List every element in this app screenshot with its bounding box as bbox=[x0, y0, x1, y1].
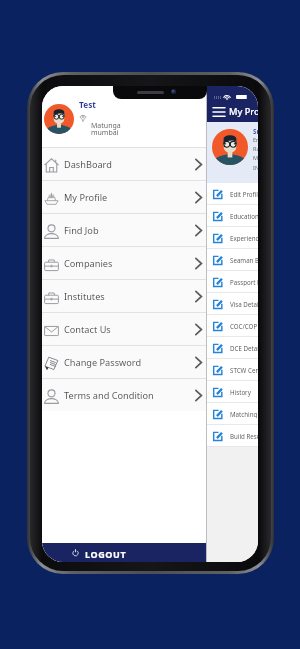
button[interactable]: Find Job bbox=[42, 213, 206, 246]
staticText: Institutes bbox=[64, 290, 105, 303]
staticText: Test bbox=[79, 99, 96, 110]
button[interactable]: DashBoard bbox=[42, 147, 206, 180]
button[interactable]: Contact Us bbox=[42, 312, 206, 345]
staticText: Contact Us bbox=[64, 323, 111, 336]
staticText: Email: test@mail.com bbox=[253, 136, 258, 144]
staticText: Change Password bbox=[64, 356, 142, 369]
staticText: Mobile: 9999999999 bbox=[253, 154, 258, 162]
staticText: Education D bbox=[230, 212, 258, 220]
staticText: Experience bbox=[230, 234, 258, 242]
staticText: DashBoard bbox=[64, 158, 112, 171]
staticText: Smit Patel bbox=[253, 127, 258, 135]
staticText: My Profile bbox=[229, 105, 258, 118]
staticText: LOGOUT bbox=[85, 548, 127, 560]
button[interactable]: DCE Details bbox=[207, 337, 258, 359]
button[interactable]: Edit Profile bbox=[207, 183, 258, 205]
button[interactable]: Seaman Bo bbox=[207, 249, 258, 271]
staticText: Edit Profile bbox=[230, 190, 258, 198]
staticText: COC/COP bbox=[230, 322, 258, 330]
staticText: Passport De bbox=[230, 278, 258, 286]
staticText: Matching Jo bbox=[230, 410, 258, 418]
staticText: INDOS: 1234567 bbox=[253, 164, 258, 172]
staticText: Rank: Master bbox=[253, 145, 258, 153]
button[interactable]: COC/COP bbox=[207, 315, 258, 337]
staticText: Terms and Condition bbox=[64, 389, 154, 402]
button[interactable]: Terms and Condition bbox=[42, 378, 206, 411]
button[interactable]: Matching Jo bbox=[207, 403, 258, 425]
button[interactable]: History bbox=[207, 381, 258, 403]
staticText: Visa Details bbox=[230, 300, 258, 308]
button[interactable]: STCW Cert bbox=[207, 359, 258, 381]
button[interactable]: Change Password bbox=[42, 345, 206, 378]
button[interactable]: Passport De bbox=[207, 271, 258, 293]
staticText: mumbai bbox=[91, 128, 119, 138]
button[interactable]: Visa Details bbox=[207, 293, 258, 315]
button[interactable]: Institutes bbox=[42, 279, 206, 312]
staticText: History bbox=[230, 388, 251, 396]
button[interactable]: Companies bbox=[42, 246, 206, 279]
button[interactable]: Education D bbox=[207, 205, 258, 227]
button[interactable]: My Profile bbox=[42, 180, 206, 213]
button[interactable]: Build Resu bbox=[207, 425, 258, 447]
staticText: Companies bbox=[64, 257, 113, 270]
button[interactable]: LOGOUT bbox=[42, 543, 206, 562]
staticText: Seaman Bo bbox=[230, 256, 258, 264]
staticText: Build Resu bbox=[230, 432, 258, 440]
staticText: My Profile bbox=[64, 191, 108, 204]
button[interactable]: Experience bbox=[207, 227, 258, 249]
button[interactable]: Open navigation menu bbox=[211, 104, 226, 120]
staticText: DCE Details bbox=[230, 344, 258, 352]
staticText: STCW Cert bbox=[230, 366, 258, 374]
staticText: Find Job bbox=[64, 224, 99, 237]
staticText: Matunga bbox=[91, 121, 121, 131]
